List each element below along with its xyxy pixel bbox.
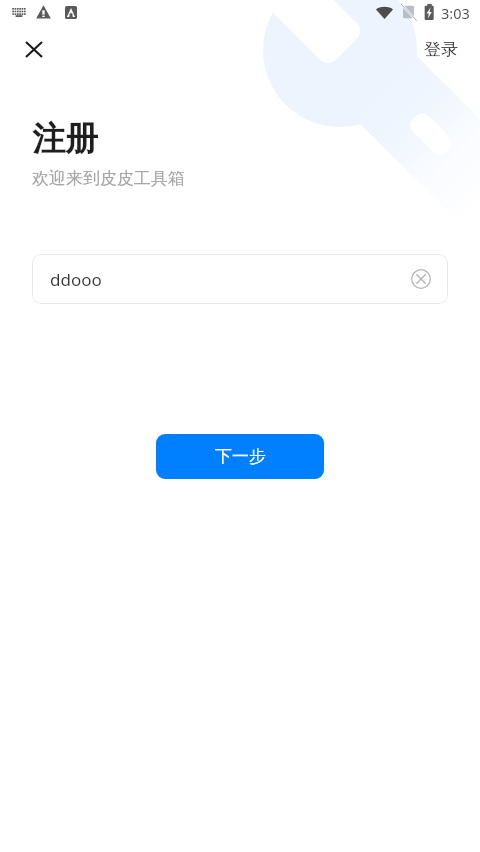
staticText: 注册	[32, 118, 98, 160]
staticText: 登录	[424, 39, 458, 60]
button[interactable]: 登录	[413, 29, 468, 69]
button[interactable]: Close	[14, 29, 54, 69]
staticText: ddooo	[50, 268, 102, 291]
staticText: 欢迎来到皮皮工具箱	[32, 168, 185, 189]
staticText: 下一步	[215, 446, 266, 467]
button[interactable]: 下一步	[156, 434, 324, 479]
staticText: 3:03	[441, 3, 470, 23]
button[interactable]: Clear text	[406, 264, 436, 294]
button[interactable]: ddooo	[32, 254, 448, 304]
